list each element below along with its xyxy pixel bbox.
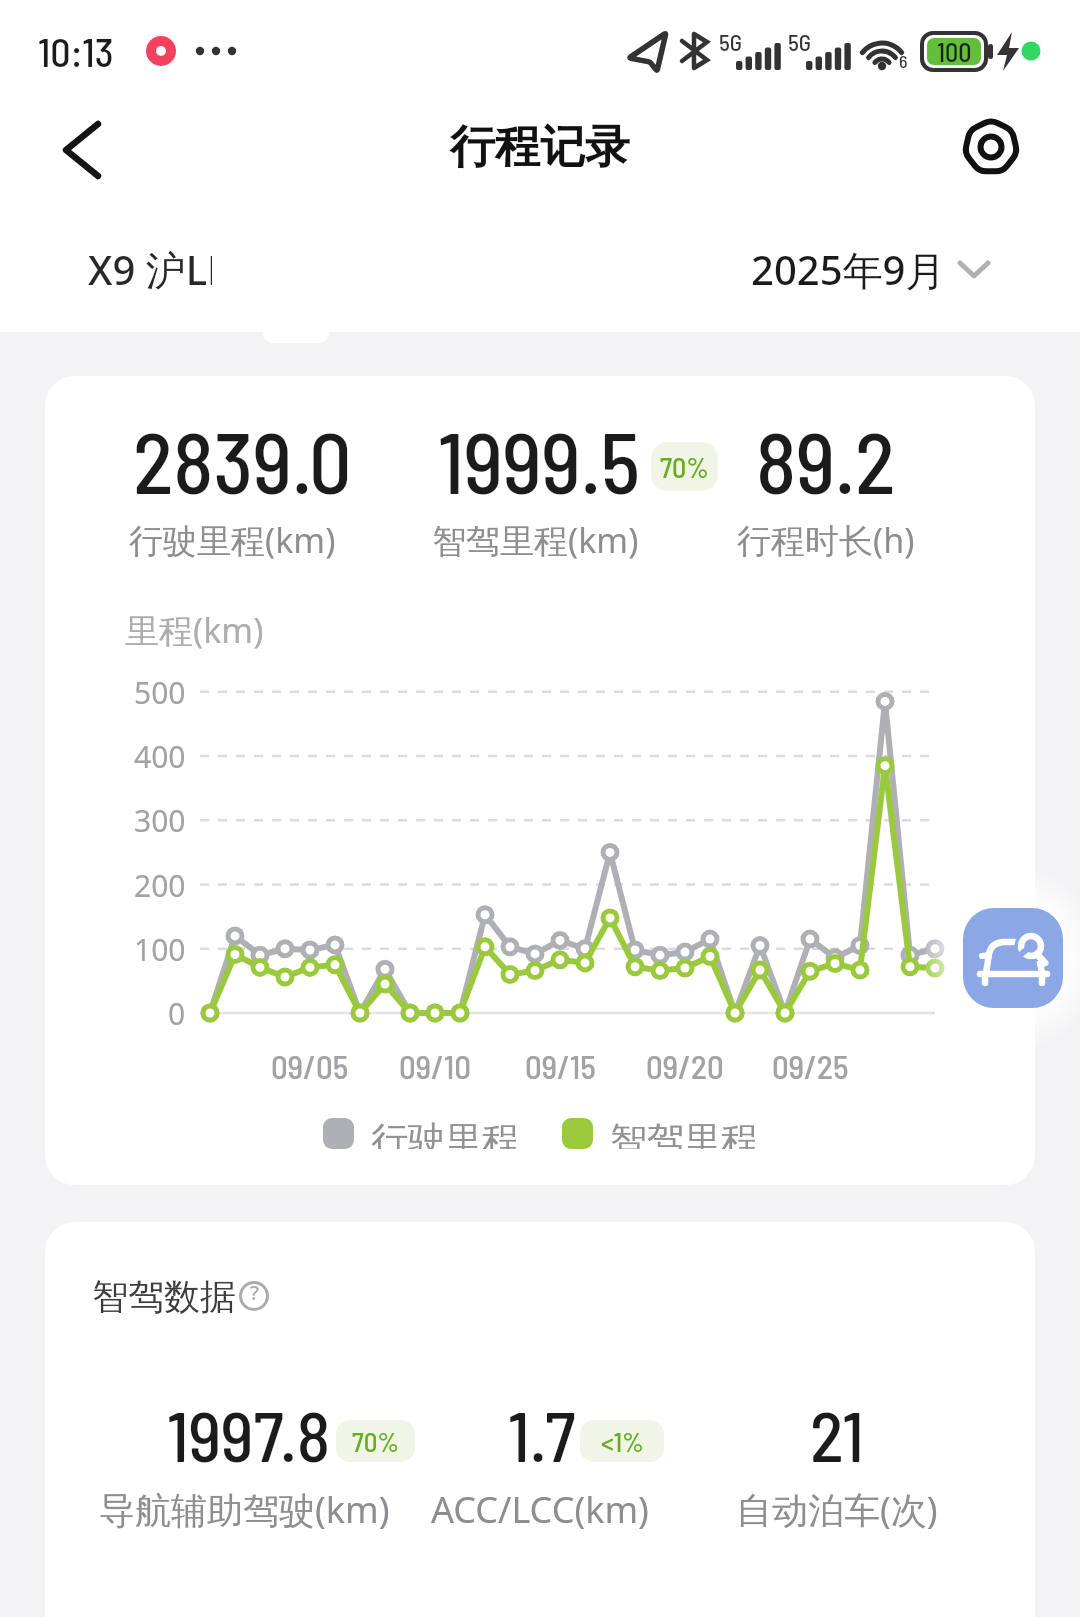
- staticText: 1.7: [508, 1392, 576, 1476]
- staticText: 5G: [788, 28, 812, 56]
- staticText: 89.2: [756, 410, 896, 511]
- button[interactable]: [963, 908, 1063, 1008]
- staticText: 智驾里程: [610, 1117, 758, 1149]
- staticText: ACC/LCC(km): [431, 1485, 649, 1534]
- staticText: 5G: [719, 28, 743, 56]
- staticText: 09/20: [646, 1046, 724, 1086]
- staticText: 100: [937, 36, 972, 67]
- staticText: 1997.8: [167, 1392, 331, 1476]
- staticText: 400: [134, 736, 186, 777]
- staticText: 里程(km): [125, 607, 264, 653]
- staticText: 100: [134, 929, 186, 970]
- staticText: 导航辅助驾驶(km): [99, 1485, 390, 1534]
- staticText: 09/15: [525, 1046, 596, 1086]
- staticText: 300: [134, 800, 186, 841]
- staticText: 2839.0: [133, 410, 352, 511]
- staticText: 智驾数据: [92, 1274, 236, 1319]
- staticText: 21: [810, 1392, 864, 1476]
- staticText: 智驾里程(km): [432, 517, 639, 563]
- staticText: 500: [134, 672, 186, 713]
- staticText: 200: [134, 865, 186, 906]
- staticText: 0: [168, 993, 186, 1034]
- staticText: 09/05: [271, 1046, 349, 1086]
- staticText: 70%: [660, 450, 709, 484]
- staticText: 行驶里程(km): [129, 517, 336, 563]
- staticText: 70%: [352, 1425, 400, 1457]
- staticText: 1999.5: [438, 410, 641, 511]
- staticText: 2025年9月: [751, 242, 946, 297]
- staticText: 行程记录: [450, 119, 630, 176]
- staticText: X9 沪LD: [88, 242, 212, 297]
- button[interactable]: ?: [237, 1279, 271, 1313]
- staticText: 自动泊车(次): [736, 1485, 938, 1534]
- staticText: 行驶里程: [371, 1117, 519, 1149]
- staticText: 行程时长(h): [737, 517, 915, 563]
- staticText: 09/25: [772, 1046, 849, 1086]
- staticText: 6: [899, 50, 908, 72]
- staticText: 09/10: [399, 1046, 471, 1086]
- button[interactable]: 2025年9月: [640, 229, 990, 309]
- staticText: ?: [250, 1279, 259, 1306]
- staticText: 10:13: [38, 27, 114, 75]
- staticText: <1%: [601, 1425, 644, 1457]
- button[interactable]: [48, 118, 112, 182]
- button[interactable]: [958, 114, 1024, 180]
